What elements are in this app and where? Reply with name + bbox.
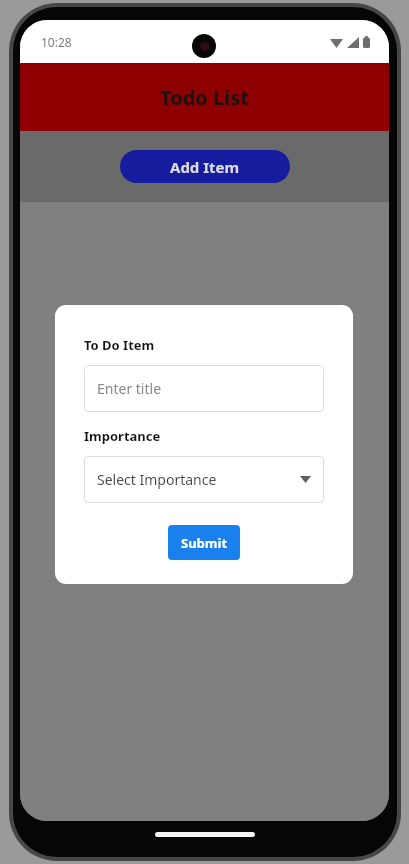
staticText: Importance xyxy=(84,427,161,445)
button[interactable]: Add Item xyxy=(120,150,290,183)
button[interactable]: Submit xyxy=(168,525,240,560)
staticText: Add Item xyxy=(170,157,240,177)
button[interactable]: Enter title xyxy=(84,365,324,412)
staticText: Submit xyxy=(181,534,228,552)
other: Front camera xyxy=(192,34,216,58)
staticText: Todo List xyxy=(160,84,249,111)
button[interactable]: Select Importance xyxy=(84,456,324,503)
staticText: Enter title xyxy=(97,379,162,398)
staticText: 10:28 xyxy=(41,34,72,50)
staticText: To Do Item xyxy=(84,336,155,354)
staticText: Select Importance xyxy=(97,470,217,489)
